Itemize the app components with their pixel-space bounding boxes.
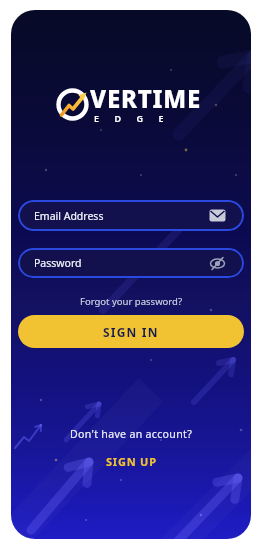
staticText: E D G E xyxy=(94,112,168,124)
staticText: VERTIME xyxy=(90,82,202,115)
button[interactable]: SIGN UP xyxy=(102,450,161,473)
button[interactable]: SIGN IN xyxy=(18,315,244,348)
staticText: Forgot your password? xyxy=(80,295,183,308)
button[interactable]: Forgot your password? xyxy=(76,291,187,312)
staticText: SIGN IN xyxy=(103,324,159,340)
button[interactable]: Email Address xyxy=(18,200,244,231)
staticText: Password xyxy=(34,256,82,270)
staticText: SIGN UP xyxy=(106,454,157,469)
staticText: Don't have an account? xyxy=(70,427,193,441)
staticText: Email Address xyxy=(34,209,104,223)
button[interactable]: Password xyxy=(18,248,244,278)
